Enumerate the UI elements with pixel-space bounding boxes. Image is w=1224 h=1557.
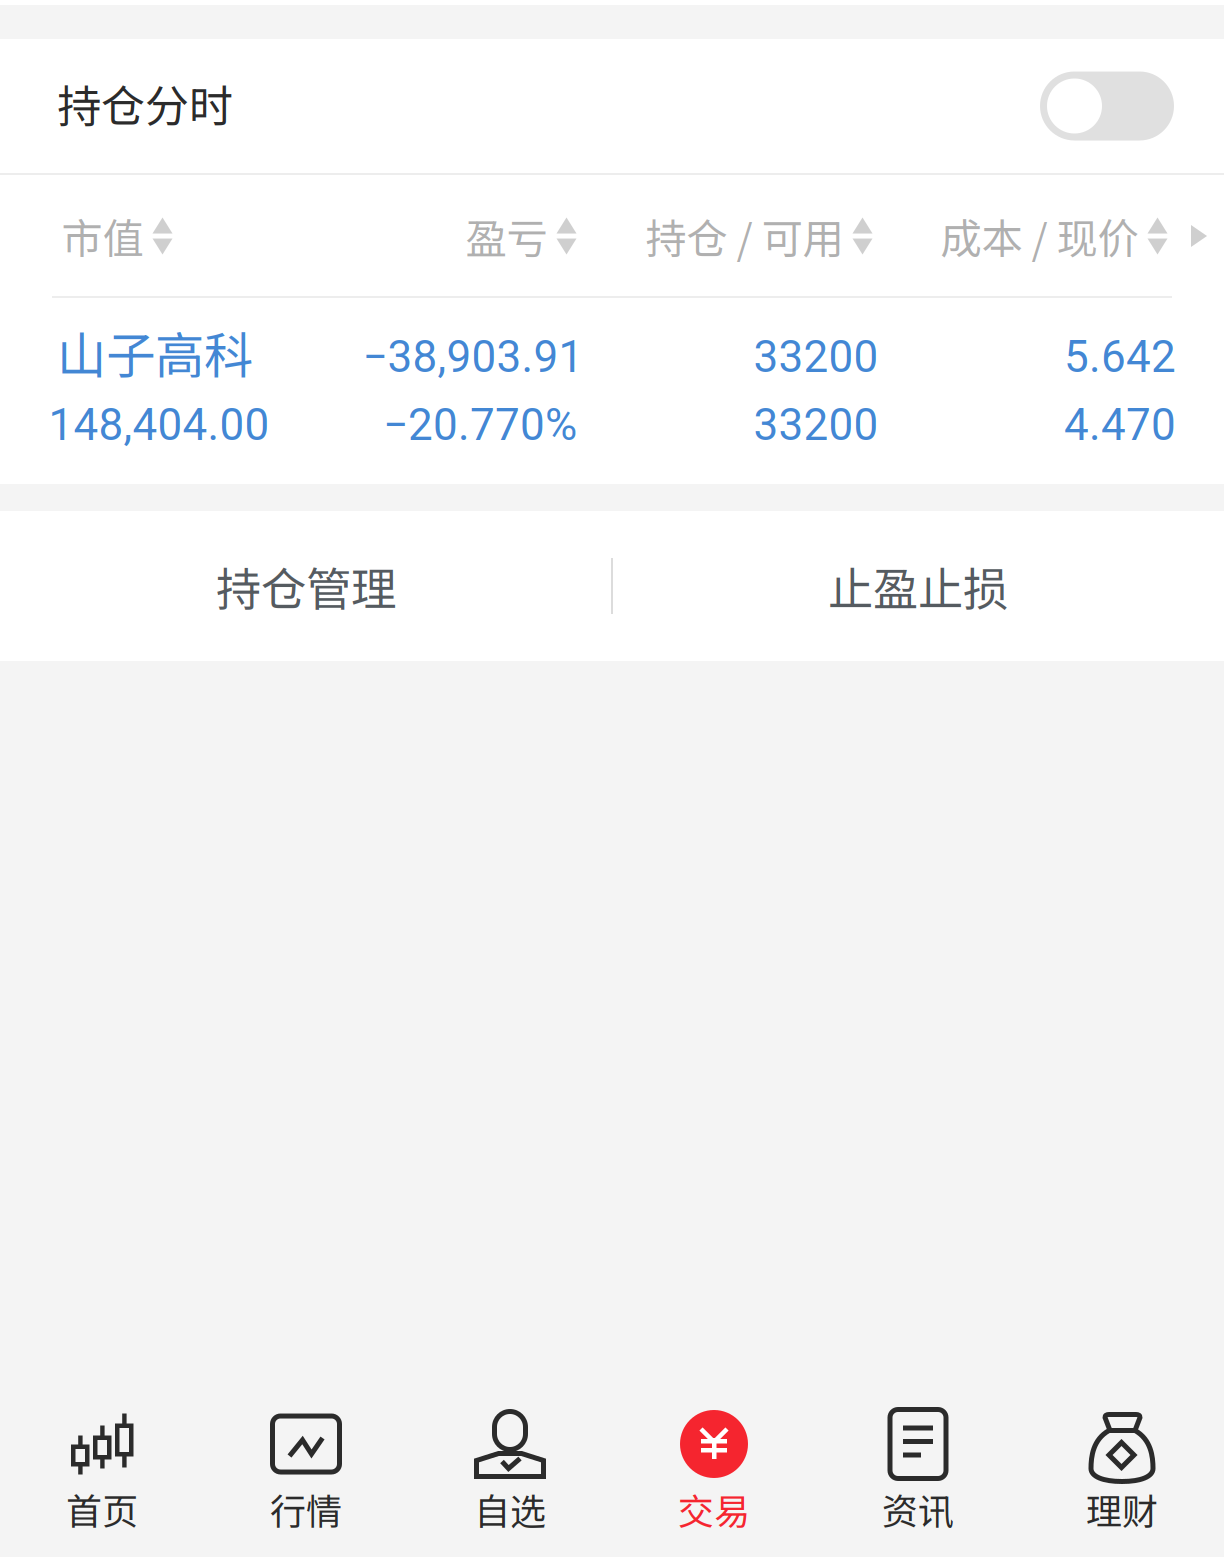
button[interactable]: 更多列	[1181, 203, 1217, 269]
staticText: 首页	[66, 1483, 138, 1535]
staticText: −20.770%	[383, 399, 577, 451]
staticText: 行情	[270, 1483, 342, 1535]
button[interactable]: 盈亏	[465, 184, 576, 288]
button[interactable]: 成本 / 现价	[940, 184, 1167, 288]
staticText: 理财	[1086, 1483, 1158, 1535]
staticText: 市值	[61, 206, 143, 266]
staticText: 33200	[753, 399, 878, 451]
button[interactable]: 首页	[0, 1400, 204, 1557]
button[interactable]: 自选	[408, 1400, 612, 1557]
button[interactable]: 交易	[612, 1400, 816, 1557]
staticText: 盈亏	[465, 206, 547, 266]
staticText: 止盈止损	[828, 553, 1008, 619]
staticText: 自选	[474, 1483, 546, 1535]
staticText: −38,903.91	[362, 331, 583, 383]
staticText: 33200	[753, 331, 878, 383]
button[interactable]: 市值	[61, 184, 172, 288]
button[interactable]: 止盈止损	[612, 511, 1224, 661]
staticText: 成本 / 现价	[940, 206, 1138, 266]
staticText: 山子高科	[57, 316, 253, 388]
staticText: 持仓 / 可用	[645, 206, 843, 266]
button[interactable]: 持仓分时	[1040, 71, 1174, 140]
staticText: 交易	[678, 1483, 750, 1535]
staticText: 持仓管理	[216, 553, 396, 619]
button[interactable]: 持仓 / 可用	[645, 184, 872, 288]
staticText: 持仓分时	[57, 71, 233, 135]
staticText: 资讯	[882, 1483, 954, 1535]
staticText: 4.470	[1064, 399, 1176, 451]
button[interactable]: 资讯	[816, 1400, 1020, 1557]
button[interactable]: 持仓管理	[0, 511, 612, 661]
staticText: 5.642	[1064, 331, 1176, 383]
button[interactable]: 山子高科	[0, 298, 1224, 484]
button[interactable]: 理财	[1020, 1400, 1224, 1557]
button[interactable]: 行情	[204, 1400, 408, 1557]
staticText: 148,404.00	[48, 399, 269, 451]
